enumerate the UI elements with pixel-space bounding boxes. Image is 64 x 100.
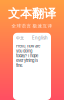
staticText: 中文	[16, 35, 24, 41]
staticText: Hello, how are you doing today? I hope e…	[16, 44, 40, 68]
staticText: 文本翻译	[8, 6, 56, 21]
staticText: 全球语言 极速互译	[11, 23, 52, 29]
staticText: English	[32, 35, 48, 41]
